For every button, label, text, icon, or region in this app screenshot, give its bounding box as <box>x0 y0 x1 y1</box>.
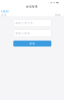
staticText: 首页 <box>1 13 7 17</box>
staticText: 帮助 <box>55 13 61 17</box>
button[interactable]: 请输入用户名 <box>13 19 51 27</box>
staticText: 请输入用户名 <box>15 21 33 25</box>
button[interactable]: 帮助 <box>55 13 64 17</box>
button[interactable]: 登录 <box>13 41 51 46</box>
staticText: 会员登录 <box>26 5 38 8</box>
staticText: 请输入密码 <box>15 32 30 35</box>
staticText: 返回 <box>3 10 9 13</box>
button[interactable]: 返回 <box>0 9 10 14</box>
staticText: 登录 <box>29 42 35 45</box>
button[interactable]: 请输入密码 <box>13 30 51 37</box>
